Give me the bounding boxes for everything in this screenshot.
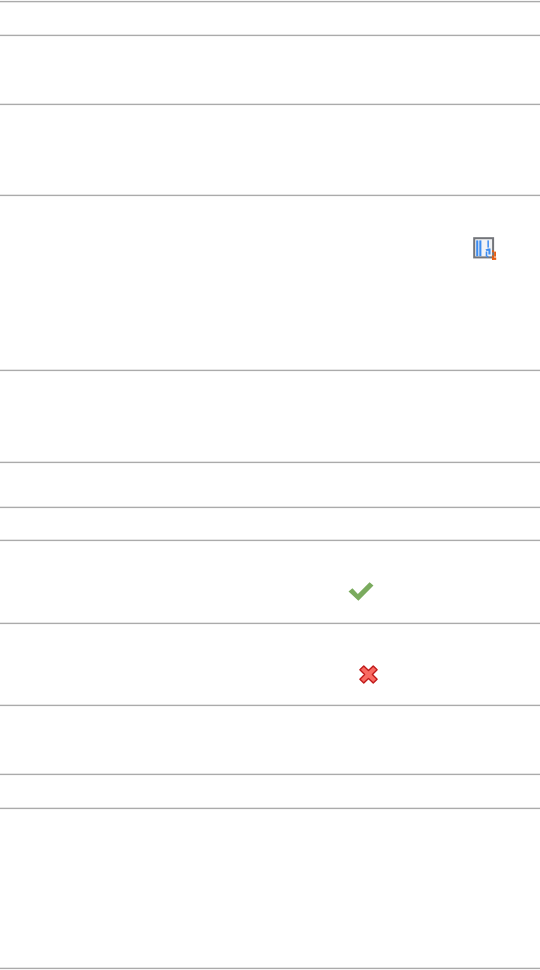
button[interactable]: Row 6 [0, 463, 540, 508]
button[interactable]: Yes [348, 581, 374, 602]
button[interactable]: Broken image [0, 196, 540, 371]
button[interactable]: Row 12 [0, 809, 540, 969]
button[interactable]: Row 1 [0, 2, 540, 36]
button[interactable]: Yes [0, 541, 540, 624]
button[interactable]: Row 7 [0, 508, 540, 541]
button[interactable]: No [358, 664, 379, 685]
button[interactable]: Row 3 [0, 105, 540, 196]
button[interactable]: Broken image [472, 236, 498, 262]
button[interactable]: Row 10 [0, 706, 540, 775]
button[interactable]: Row 5 [0, 371, 540, 463]
button[interactable]: No [0, 624, 540, 706]
button[interactable]: Row 11 [0, 775, 540, 809]
button[interactable]: Row 2 [0, 36, 540, 105]
